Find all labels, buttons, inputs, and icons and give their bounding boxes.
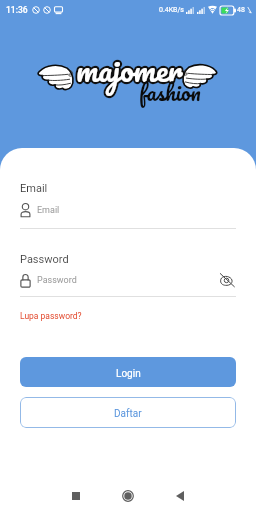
staticText: Lupa password? bbox=[20, 311, 82, 321]
button[interactable]: Recents bbox=[59, 480, 93, 512]
button[interactable]: Login bbox=[20, 357, 236, 387]
staticText: fashion bbox=[139, 74, 201, 111]
staticText: Password bbox=[37, 275, 77, 286]
staticText: majomer bbox=[76, 43, 183, 96]
staticText: Daftar bbox=[114, 408, 142, 420]
staticText: Login bbox=[116, 368, 141, 380]
staticText: Email bbox=[37, 205, 60, 216]
staticText: Email bbox=[20, 182, 48, 195]
staticText: majomer bbox=[76, 43, 183, 96]
staticText: 0.4KB/s bbox=[159, 6, 184, 14]
staticText: 11:36 bbox=[6, 5, 28, 15]
button[interactable]: Daftar bbox=[20, 397, 236, 428]
button[interactable]: Lupa password? bbox=[20, 311, 82, 321]
button[interactable]: Back bbox=[163, 480, 197, 512]
staticText: Password bbox=[20, 253, 69, 266]
button[interactable]: Home bbox=[111, 480, 145, 512]
button[interactable]: Show password bbox=[218, 272, 236, 288]
staticText: 48 bbox=[237, 6, 245, 14]
